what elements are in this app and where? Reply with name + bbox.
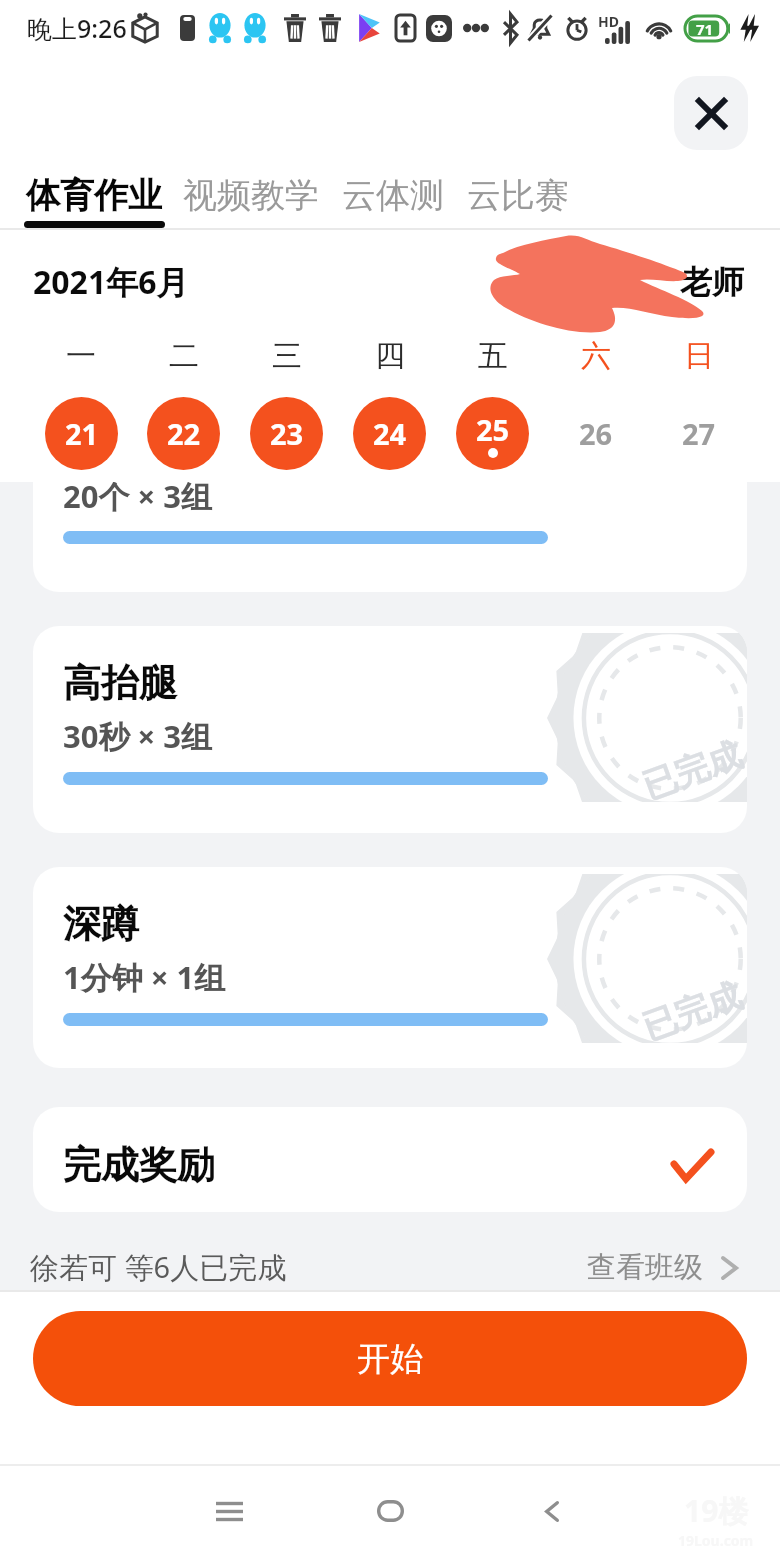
button[interactable]: Home <box>310 1464 471 1558</box>
staticText: 五 <box>478 337 508 375</box>
button[interactable]: Recents <box>149 1464 310 1558</box>
button[interactable]: 22 <box>147 397 220 470</box>
staticText: 高抬腿 <box>63 659 177 707</box>
staticText: 20个 × 3组 <box>63 482 213 517</box>
button[interactable]: 已完成 <box>33 482 747 592</box>
button[interactable]: 视频教学 <box>183 174 319 217</box>
staticText: 查看班级 <box>587 1249 703 1286</box>
staticText: 徐若可 等6人已完成 <box>30 1247 287 1287</box>
button[interactable]: 已完成 <box>33 867 747 1068</box>
staticText: 二 <box>169 337 199 375</box>
button[interactable]: 23 <box>250 397 323 470</box>
staticText: 开始 <box>357 1338 423 1380</box>
staticText: 23 <box>270 414 304 453</box>
button[interactable]: 21 <box>45 397 118 470</box>
button[interactable]: 开始 <box>33 1311 747 1406</box>
button[interactable]: 查看班级 <box>587 1249 738 1286</box>
staticText: HD <box>598 12 619 31</box>
staticText: 19Lou.com <box>678 1531 754 1550</box>
staticText: 71 <box>696 19 714 39</box>
button[interactable]: 云体测 <box>342 174 444 217</box>
staticText: 25 <box>476 410 510 449</box>
button[interactable]: 26 <box>559 397 632 470</box>
button[interactable]: 27 <box>662 397 735 470</box>
button[interactable]: Back <box>471 1464 632 1558</box>
button[interactable]: 25 <box>456 397 529 470</box>
staticText: 22 <box>167 414 201 453</box>
button[interactable]: 完成奖励 <box>33 1107 747 1212</box>
button[interactable]: 已完成 <box>33 626 747 833</box>
staticText: 老师 <box>680 262 744 302</box>
staticText: 三 <box>272 337 302 375</box>
staticText: 完成奖励 <box>63 1141 215 1189</box>
other: Completed <box>672 1150 713 1181</box>
staticText: 晚上9:26 <box>27 11 127 45</box>
staticText: 已完成 <box>637 974 747 1043</box>
button[interactable]: Close <box>674 76 748 150</box>
staticText: 四 <box>375 337 405 375</box>
staticText: 六 <box>581 337 611 375</box>
staticText: 日 <box>684 337 714 375</box>
staticText: 24 <box>373 414 407 453</box>
button[interactable]: 云比赛 <box>467 174 569 217</box>
staticText: 一 <box>66 337 96 375</box>
staticText: 2021年6月 <box>33 260 189 304</box>
button[interactable]: 体育作业 <box>26 174 162 217</box>
staticText: 21 <box>65 414 99 453</box>
button[interactable]: 24 <box>353 397 426 470</box>
staticText: 已完成 <box>637 733 747 802</box>
staticText: 27 <box>682 414 716 453</box>
staticText: 1分钟 × 1组 <box>63 956 226 998</box>
staticText: 26 <box>579 414 613 453</box>
staticText: 30秒 × 3组 <box>63 715 213 757</box>
staticText: 19楼 <box>684 1490 749 1531</box>
staticText: 深蹲 <box>63 900 139 948</box>
